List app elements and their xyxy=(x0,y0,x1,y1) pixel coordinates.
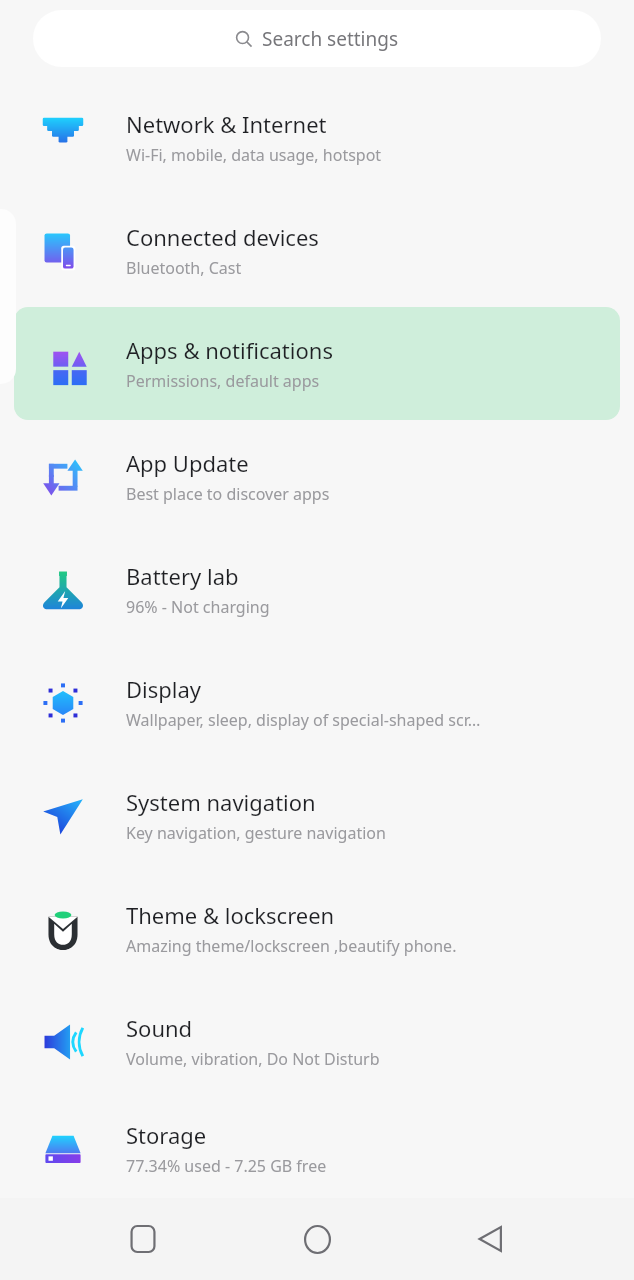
button[interactable]: Theme & lockscreen xyxy=(0,872,634,985)
staticText: Display xyxy=(126,674,202,704)
staticText: Amazing theme/lockscreen ,beautify phone… xyxy=(126,935,457,957)
staticText: Bluetooth, Cast xyxy=(126,257,242,279)
staticText: Battery lab xyxy=(126,561,239,591)
button[interactable]: Recents xyxy=(112,1208,174,1270)
staticText: Theme & lockscreen xyxy=(126,900,335,930)
button[interactable]: Battery lab xyxy=(0,533,634,646)
staticText: Permissions, default apps xyxy=(126,370,320,392)
staticText: Best place to discover apps xyxy=(126,483,330,505)
button[interactable]: Apps & notifications xyxy=(14,307,620,420)
staticText: System navigation xyxy=(126,787,316,817)
staticText: Sound xyxy=(126,1013,193,1043)
staticText: Wi-Fi, mobile, data usage, hotspot xyxy=(126,144,382,166)
staticText: 96% - Not charging xyxy=(126,596,270,618)
button[interactable]: Home xyxy=(286,1208,348,1270)
staticText: Key navigation, gesture navigation xyxy=(126,822,386,844)
staticText: Storage xyxy=(126,1120,207,1150)
staticText: Apps & notifications xyxy=(126,335,333,365)
button[interactable]: System navigation xyxy=(0,759,634,872)
staticText: Network & Internet xyxy=(126,109,327,139)
staticText: App Update xyxy=(126,448,249,478)
staticText: Wallpaper, sleep, display of special-sha… xyxy=(126,709,481,731)
button[interactable]: Storage xyxy=(0,1098,634,1198)
staticText: Connected devices xyxy=(126,222,319,252)
button[interactable]: Sound xyxy=(0,985,634,1098)
button[interactable]: Back xyxy=(460,1208,522,1270)
staticText: 77.34% used - 7.25 GB free xyxy=(126,1155,327,1177)
staticText: Volume, vibration, Do Not Disturb xyxy=(126,1048,380,1070)
button[interactable]: Search settings xyxy=(33,10,601,67)
button[interactable]: Connected devices xyxy=(0,194,634,307)
button[interactable]: Display xyxy=(0,646,634,759)
button[interactable]: Network & Internet xyxy=(0,81,634,194)
staticText: Search settings xyxy=(262,26,399,52)
button[interactable]: App Update xyxy=(0,420,634,533)
